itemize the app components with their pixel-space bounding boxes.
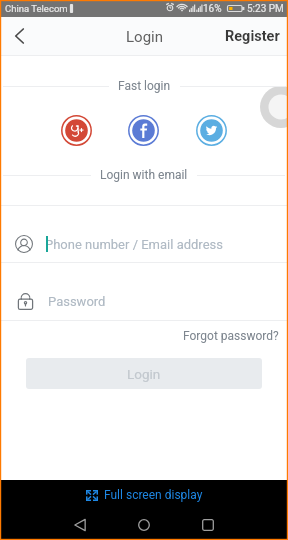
button[interactable]: Full screen display xyxy=(0,480,288,510)
staticText: Full screen display xyxy=(104,488,203,502)
button[interactable]: Back xyxy=(0,17,38,55)
staticText: Login with email xyxy=(100,168,188,182)
button[interactable]: Sign in with Facebook xyxy=(128,115,159,146)
button[interactable]: Register xyxy=(215,19,288,54)
staticText: China Telecom xyxy=(5,3,68,14)
button[interactable]: Password xyxy=(0,263,288,320)
button[interactable]: Phone number / Email address xyxy=(0,206,288,262)
staticText: 5:23 PM xyxy=(247,3,284,15)
staticText: Password xyxy=(48,294,106,309)
staticText: Login xyxy=(126,28,163,46)
staticText: Fast login xyxy=(118,79,171,93)
button[interactable]: Sign in with Google Plus xyxy=(61,115,92,146)
button[interactable]: Login xyxy=(26,358,262,389)
button[interactable]: Home xyxy=(128,509,160,540)
button[interactable]: Forgot password? xyxy=(174,324,288,348)
button[interactable]: Back xyxy=(64,509,96,540)
button[interactable]: Sign in with Twitter xyxy=(196,115,227,146)
staticText: 16% xyxy=(203,3,222,15)
staticText: Register xyxy=(225,28,280,45)
staticText: Phone number / Email address xyxy=(45,237,223,252)
button[interactable]: Recent apps xyxy=(192,509,224,540)
staticText: Forgot password? xyxy=(183,329,279,343)
staticText: Login xyxy=(127,366,161,382)
